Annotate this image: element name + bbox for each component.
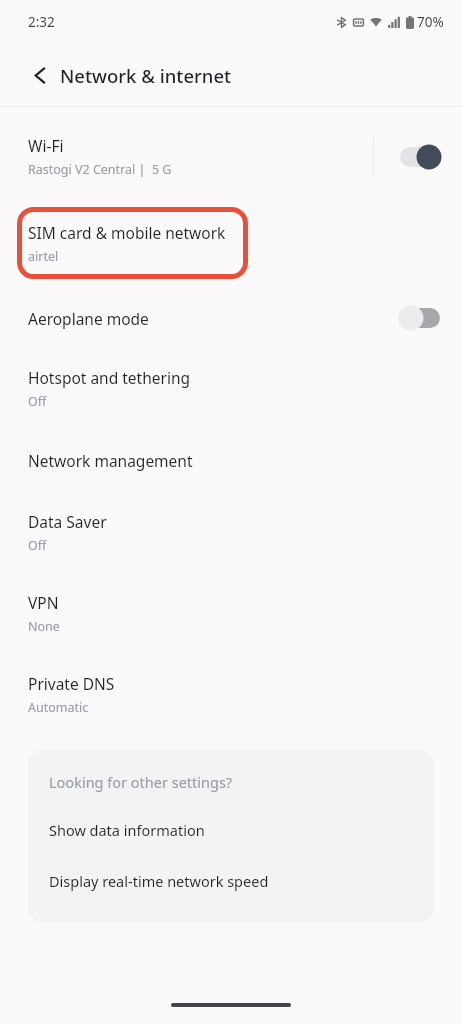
button[interactable]: Display real-time network speed xyxy=(28,868,434,894)
staticText: SIM card & mobile network xyxy=(28,222,226,243)
button[interactable]: Wi-Fi toggle, on xyxy=(396,142,444,172)
staticText: Rastogi V2 Central | 5 G xyxy=(28,161,172,178)
button[interactable]: Private DNS xyxy=(0,667,462,722)
staticText: 2:32 xyxy=(28,13,55,31)
staticText: Wi-Fi xyxy=(28,135,64,156)
staticText: Show data information xyxy=(49,820,205,840)
staticText: Display real-time network speed xyxy=(49,871,269,891)
button[interactable]: VPN xyxy=(0,586,462,641)
button[interactable]: Aeroplane mode toggle, off xyxy=(396,303,444,333)
staticText: Network management xyxy=(28,450,193,471)
staticText: Automatic xyxy=(28,699,89,716)
staticText: Data Saver xyxy=(28,511,107,532)
staticText: Network & internet xyxy=(60,63,232,88)
staticText: VPN xyxy=(28,592,59,613)
staticText: 70% xyxy=(417,13,444,31)
button[interactable]: Aeroplane mode xyxy=(0,297,462,339)
button[interactable]: Data Saver xyxy=(0,505,462,560)
staticText: Off xyxy=(28,393,47,410)
button[interactable]: Hotspot and tethering xyxy=(0,361,462,416)
staticText: Private DNS xyxy=(28,673,115,694)
button[interactable]: Wi-Fi xyxy=(0,129,462,184)
staticText: Aeroplane mode xyxy=(28,308,149,329)
button[interactable]: Show data information xyxy=(28,817,434,843)
staticText: Off xyxy=(28,537,47,554)
button[interactable]: SIM card & mobile network xyxy=(17,207,248,279)
staticText: None xyxy=(28,618,60,635)
button[interactable]: Back xyxy=(22,57,58,93)
staticText: Looking for other settings? xyxy=(49,772,233,792)
button[interactable]: Network management xyxy=(0,444,462,477)
staticText: airtel xyxy=(28,248,59,265)
staticText: Hotspot and tethering xyxy=(28,367,191,388)
